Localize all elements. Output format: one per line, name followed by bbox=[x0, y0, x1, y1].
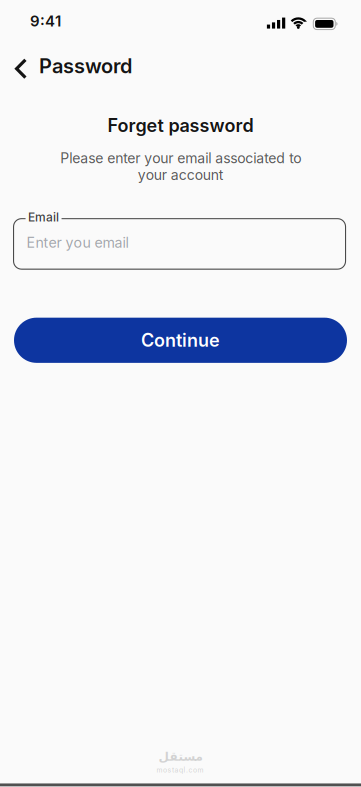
button[interactable]: Email bbox=[13, 218, 346, 269]
staticText: Forget password bbox=[107, 114, 253, 136]
staticText: Password bbox=[39, 54, 132, 78]
staticText: Please enter your email associated to yo… bbox=[60, 150, 301, 183]
staticText: 9:41 bbox=[30, 12, 61, 30]
staticText: Enter you email bbox=[27, 234, 129, 251]
staticText: Continue bbox=[141, 329, 220, 351]
button[interactable]: Back bbox=[15, 55, 27, 82]
button[interactable]: Continue bbox=[14, 318, 347, 363]
staticText: Email bbox=[28, 210, 59, 224]
staticText: mostaql.com bbox=[156, 766, 203, 774]
staticText: مستقل bbox=[158, 750, 202, 763]
